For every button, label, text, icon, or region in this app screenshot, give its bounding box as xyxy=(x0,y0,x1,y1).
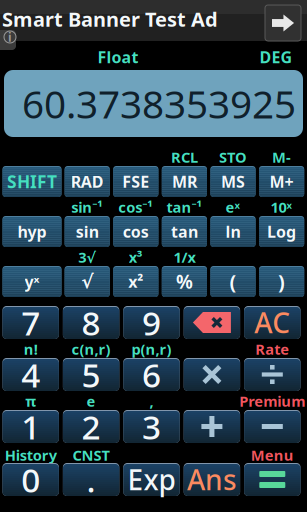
staticText: tan xyxy=(171,221,198,242)
button[interactable]: x² xyxy=(113,266,158,297)
staticText: √ xyxy=(81,271,93,292)
button[interactable]: 2 xyxy=(63,410,119,443)
staticText: Log xyxy=(267,221,296,242)
button[interactable]: Backspace xyxy=(184,306,240,339)
staticText: Smart Banner Test Ad xyxy=(2,6,218,32)
staticText: RCL xyxy=(171,147,198,167)
button[interactable]: RAD xyxy=(65,166,110,197)
button[interactable]: 7 xyxy=(2,306,59,339)
button[interactable]: 6 xyxy=(123,358,180,391)
staticText: 1 xyxy=(21,404,40,449)
button[interactable]: sin xyxy=(65,216,110,247)
button[interactable]: FSE xyxy=(113,166,158,197)
button[interactable]: M+ xyxy=(259,166,304,197)
button[interactable]: Ad information xyxy=(0,26,21,48)
button[interactable]: Equals xyxy=(244,463,300,496)
button[interactable]: Multiply xyxy=(184,358,240,391)
staticText: M- xyxy=(272,147,291,167)
staticText: 3√ xyxy=(78,247,96,267)
button[interactable]: cos xyxy=(113,216,158,247)
button[interactable]: Subtract xyxy=(244,410,300,443)
staticText: x² xyxy=(128,271,143,292)
staticText: 1/x xyxy=(173,247,195,267)
button[interactable]: √ xyxy=(65,266,110,297)
button[interactable]: hyp xyxy=(2,216,61,247)
staticText: SHIFT xyxy=(7,170,57,193)
button[interactable]: ) xyxy=(259,266,304,297)
staticText: History xyxy=(5,445,57,465)
button[interactable]: 9 xyxy=(123,306,180,339)
staticText: AC xyxy=(254,304,290,341)
staticText: sin⁻¹ xyxy=(71,197,103,217)
staticText: hyp xyxy=(17,221,46,242)
button[interactable]: Add xyxy=(184,410,240,443)
staticText: , xyxy=(149,391,153,411)
staticText: MS xyxy=(221,171,245,192)
staticText: c(n,r) xyxy=(72,339,111,359)
staticText: ( xyxy=(229,268,236,295)
staticText: STO xyxy=(219,147,247,167)
button[interactable]: 8 xyxy=(63,306,119,339)
staticText: yˣ xyxy=(24,271,39,292)
staticText: 8 xyxy=(82,300,101,345)
button[interactable]: Exp xyxy=(123,463,180,496)
staticText: Exp xyxy=(127,461,175,498)
button[interactable]: AC xyxy=(244,306,300,339)
staticText: Float xyxy=(97,46,138,68)
staticText: cos xyxy=(123,221,149,242)
staticText: DEG xyxy=(259,46,292,68)
button[interactable]: MS xyxy=(210,166,256,197)
staticText: 9 xyxy=(142,300,161,345)
button[interactable]: 3 xyxy=(123,410,180,443)
button[interactable]: 5 xyxy=(63,358,119,391)
button[interactable]: Log xyxy=(259,216,304,247)
staticText: M+ xyxy=(270,171,294,192)
staticText: p(n,r) xyxy=(131,339,171,359)
staticText: FSE xyxy=(122,171,149,192)
staticText: 5 xyxy=(82,352,101,397)
staticText: π xyxy=(25,391,36,411)
staticText: e xyxy=(87,391,96,411)
button[interactable]: tan xyxy=(162,216,207,247)
staticText: ln xyxy=(225,221,240,242)
staticText: 7 xyxy=(21,300,40,345)
staticText: Menu xyxy=(251,445,294,465)
button[interactable]: 4 xyxy=(2,358,59,391)
button[interactable]: MR xyxy=(162,166,207,197)
staticText: 2 xyxy=(82,404,101,449)
staticText: % xyxy=(176,269,193,294)
staticText: cos⁻¹ xyxy=(118,197,153,217)
staticText: 3 xyxy=(142,404,161,449)
button[interactable]: ( xyxy=(210,266,256,297)
button[interactable]: Divide xyxy=(244,358,300,391)
staticText: eˣ xyxy=(225,197,240,217)
button[interactable]: 1 xyxy=(2,410,59,443)
staticText: 6 xyxy=(142,352,161,397)
button[interactable]: . xyxy=(63,463,119,496)
staticText: n! xyxy=(24,339,38,359)
staticText: Rate xyxy=(255,339,289,359)
staticText: 0 xyxy=(21,457,40,502)
staticText: Premium xyxy=(239,391,305,411)
staticText: ) xyxy=(278,268,285,295)
button[interactable]: Ans xyxy=(184,463,240,496)
staticText: CNST xyxy=(73,445,110,465)
staticText: MR xyxy=(172,171,197,192)
staticText: i xyxy=(8,29,12,45)
button[interactable]: SHIFT xyxy=(2,166,61,197)
button[interactable]: ln xyxy=(210,216,256,247)
staticText: tan⁻¹ xyxy=(166,197,202,217)
button[interactable]: Open advertisement xyxy=(265,5,301,41)
staticText: 10ˣ xyxy=(271,197,293,217)
button[interactable]: % xyxy=(162,266,207,297)
staticText: sin xyxy=(76,221,99,242)
staticText: . xyxy=(87,457,96,502)
staticText: 60.3738353925 xyxy=(22,78,296,129)
staticText: 4 xyxy=(21,352,40,397)
staticText: x³ xyxy=(129,247,143,267)
button[interactable]: yˣ xyxy=(2,266,61,297)
staticText: RAD xyxy=(71,171,104,192)
button[interactable]: 0 xyxy=(2,463,59,496)
staticText: Ans xyxy=(187,461,237,498)
